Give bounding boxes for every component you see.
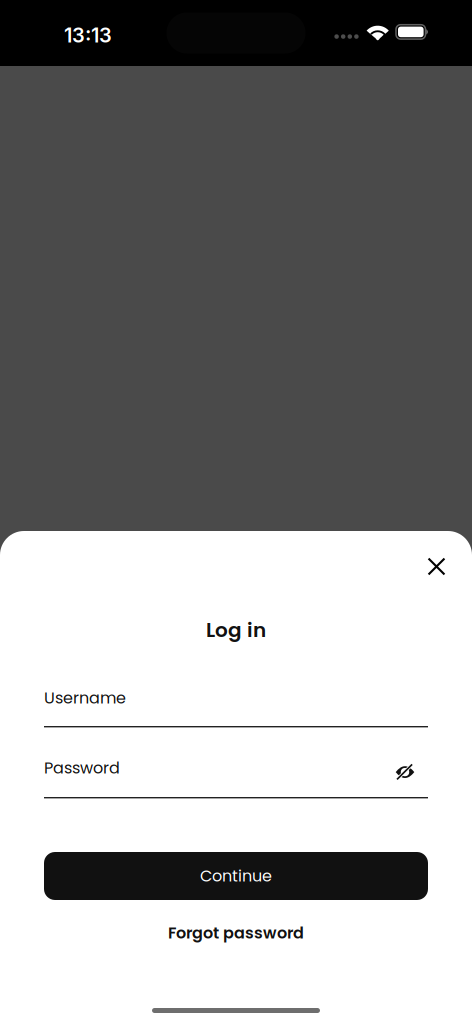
button[interactable]: Continue bbox=[44, 852, 428, 900]
staticText: Continue bbox=[200, 865, 272, 887]
staticText: Password bbox=[44, 757, 120, 779]
staticText: Log in bbox=[206, 616, 266, 644]
button[interactable]: Forgot password bbox=[165, 921, 307, 945]
button[interactable]: Close bbox=[414, 544, 458, 588]
button[interactable]: Show password bbox=[388, 758, 422, 786]
staticText: 13:13 bbox=[64, 23, 112, 47]
staticText: Username bbox=[44, 687, 126, 709]
staticText: Forgot password bbox=[168, 922, 304, 944]
